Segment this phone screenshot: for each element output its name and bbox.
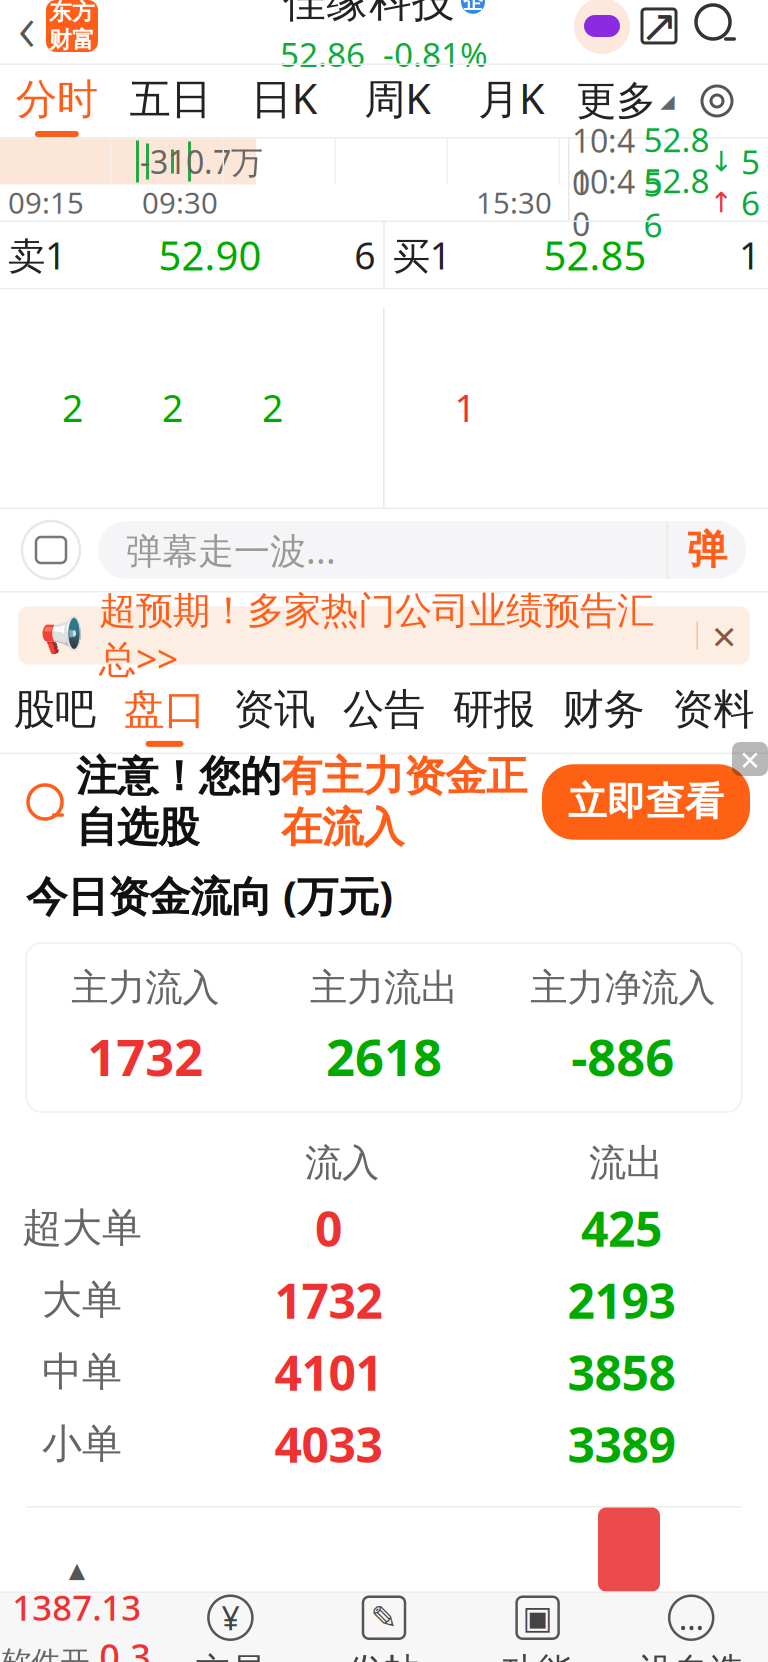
button[interactable]: 财务 <box>549 678 658 752</box>
staticText: 52.85 <box>643 117 709 206</box>
staticText: 📢 <box>40 616 83 655</box>
staticText: 东方 财富 <box>49 0 95 54</box>
staticText: 10:40 <box>572 119 635 204</box>
button[interactable]: 研报 <box>439 678 549 752</box>
button[interactable]: 五日 <box>114 65 227 137</box>
staticText: 有主力资金正在流入 <box>281 751 527 853</box>
button[interactable]: 弹幕走一波... <box>98 521 746 579</box>
staticText: 五日 <box>129 74 211 125</box>
staticText: 0 <box>315 1196 342 1260</box>
staticText: 10:40 <box>572 160 635 245</box>
staticText: 4101 <box>274 1340 382 1404</box>
staticText: 09:30 <box>142 183 218 222</box>
staticText: 09:15 <box>8 183 84 222</box>
staticText: 弹幕走一波... <box>126 526 336 574</box>
button[interactable]: 周K <box>341 65 455 137</box>
staticText: 资料 <box>672 684 754 735</box>
staticText: 5 <box>741 139 760 184</box>
button[interactable]: 盘口 <box>110 678 219 752</box>
staticText: 主力流出 <box>310 965 458 1011</box>
staticText: 1 <box>739 230 760 280</box>
staticText: 研报 <box>453 684 535 735</box>
button[interactable]: ▲ <box>0 1593 154 1662</box>
button[interactable]: Back <box>0 0 98 70</box>
staticText: 1 <box>454 383 475 432</box>
staticText: 4033 <box>274 1412 382 1476</box>
staticText: 2618 <box>326 1023 442 1090</box>
button[interactable]: Search <box>688 0 746 55</box>
button[interactable]: 日K <box>227 65 341 137</box>
button[interactable]: 资讯 <box>219 678 329 752</box>
staticText: 交易 <box>195 1650 265 1662</box>
staticText: 卖1 <box>8 230 66 280</box>
staticText: 主力净流入 <box>530 965 715 1011</box>
staticText: 财务 <box>562 684 644 735</box>
staticText: 6 <box>741 180 760 225</box>
button[interactable]: ▣ <box>461 1593 614 1662</box>
button[interactable]: 分时 <box>0 65 114 137</box>
staticText: 2193 <box>567 1268 675 1332</box>
staticText: 弹 <box>687 525 727 574</box>
staticText: 分时 <box>16 74 98 125</box>
button[interactable]: 股吧 <box>0 678 110 752</box>
staticText: ↑ <box>709 187 732 218</box>
staticText: ▣ <box>523 1600 553 1636</box>
staticText: 2 <box>262 383 283 432</box>
staticText: -886 <box>571 1023 674 1090</box>
button[interactable]: … <box>614 1593 768 1662</box>
staticText: 功能 <box>503 1650 573 1662</box>
staticText: 日K <box>251 70 318 125</box>
staticText: 企 <box>463 0 483 14</box>
staticText: 1387.13 <box>12 1584 141 1630</box>
staticText: 6 <box>354 230 375 280</box>
staticText: 注意！您的自选股 <box>76 751 281 853</box>
staticText: 更多 <box>576 76 656 125</box>
staticText: 1732 <box>274 1268 382 1332</box>
staticText: 小单 <box>42 1419 122 1468</box>
button[interactable]: Chart settings <box>682 65 752 137</box>
staticText: 2 <box>162 383 183 432</box>
staticText: ▲ <box>69 1558 85 1582</box>
staticText: ↗ <box>640 0 678 52</box>
staticText: 软件开发 <box>2 1644 89 1662</box>
button[interactable]: ✎ <box>307 1593 461 1662</box>
staticText: 资讯 <box>233 684 315 735</box>
button[interactable]: AI assistant <box>574 0 630 54</box>
staticText: 52.85 <box>543 228 646 281</box>
staticText: ¥ <box>221 1596 239 1639</box>
button[interactable]: ¥ <box>154 1593 307 1662</box>
staticText: 15:30 <box>476 183 552 222</box>
staticText: 425 <box>581 1196 662 1260</box>
staticText: 股吧 <box>14 684 96 735</box>
staticText: 月K <box>478 70 545 125</box>
button[interactable]: Close ad <box>732 742 768 776</box>
staticText: 主力流入 <box>71 965 219 1011</box>
staticText: 52.86 -0.81% <box>280 32 488 76</box>
staticText: 52.90 <box>159 228 262 281</box>
staticText: ‹ <box>18 0 36 70</box>
button[interactable]: Share <box>630 0 688 55</box>
staticText: 周K <box>364 70 431 125</box>
staticText: 流出 <box>589 1140 663 1186</box>
staticText: 买1 <box>393 230 451 280</box>
staticText: 盘口 <box>124 684 206 735</box>
staticText: 3389 <box>567 1412 675 1476</box>
button[interactable]: 更多 <box>568 65 682 137</box>
staticText: 大单 <box>42 1275 122 1324</box>
staticText: 52.86 <box>643 158 709 247</box>
staticText: 中单 <box>42 1347 122 1396</box>
button[interactable]: 资料 <box>658 678 768 752</box>
button[interactable]: 月K <box>455 65 568 137</box>
staticText: 公告 <box>343 684 425 735</box>
staticText: 发帖 <box>349 1650 419 1662</box>
button[interactable]: 📢 <box>0 592 768 678</box>
staticText: 流入 <box>305 1140 379 1186</box>
staticText: 0.36% <box>99 1632 151 1662</box>
button[interactable]: 公告 <box>329 678 439 752</box>
staticText: 佳缘科技 <box>283 0 455 28</box>
button[interactable]: 注意！您的自选股 <box>0 760 768 844</box>
staticText: 超预期！多家热门公司业绩预告汇总>> <box>99 588 654 683</box>
staticText: -310.7万 <box>140 140 263 183</box>
button[interactable]: Notes <box>22 521 80 579</box>
staticText: ↓ <box>709 146 732 177</box>
